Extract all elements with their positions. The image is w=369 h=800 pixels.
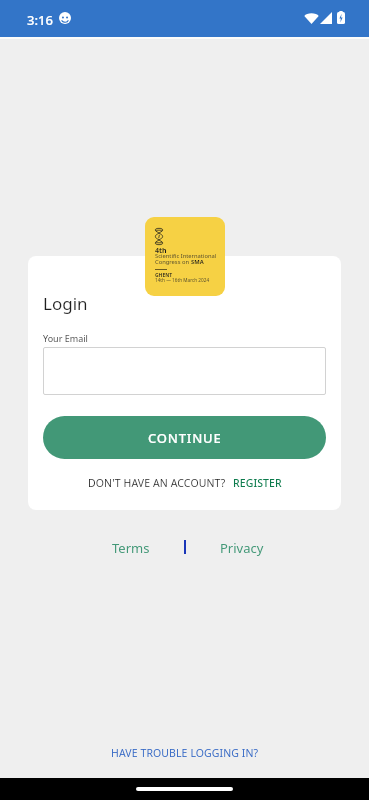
staticText: Login [43,292,88,315]
staticText: DON'T HAVE AN ACCOUNT? [88,476,226,490]
staticText: Terms [112,539,150,557]
staticText: 14th — 16th March 2024 [155,277,210,283]
staticText: Your Email [43,332,88,344]
button[interactable]: HAVE TROUBLE LOGGING IN? [103,742,267,764]
button[interactable]: Your Email input [43,347,326,395]
staticText: 4th [155,246,167,256]
staticText: Scientific International [155,252,217,260]
staticText: 3:16 [27,11,53,29]
staticText: SMA [191,258,204,266]
button[interactable]: Terms [104,534,158,562]
button[interactable]: Privacy [212,534,272,562]
button[interactable]: REGISTER [233,476,282,490]
staticText: CONTINUE [148,429,222,447]
staticText: Congress on [155,258,191,266]
staticText: GHENT [155,272,173,279]
staticText: REGISTER [233,476,282,490]
staticText: Privacy [220,539,264,557]
staticText: HAVE TROUBLE LOGGING IN? [111,746,259,760]
button[interactable]: CONTINUE [43,416,326,459]
